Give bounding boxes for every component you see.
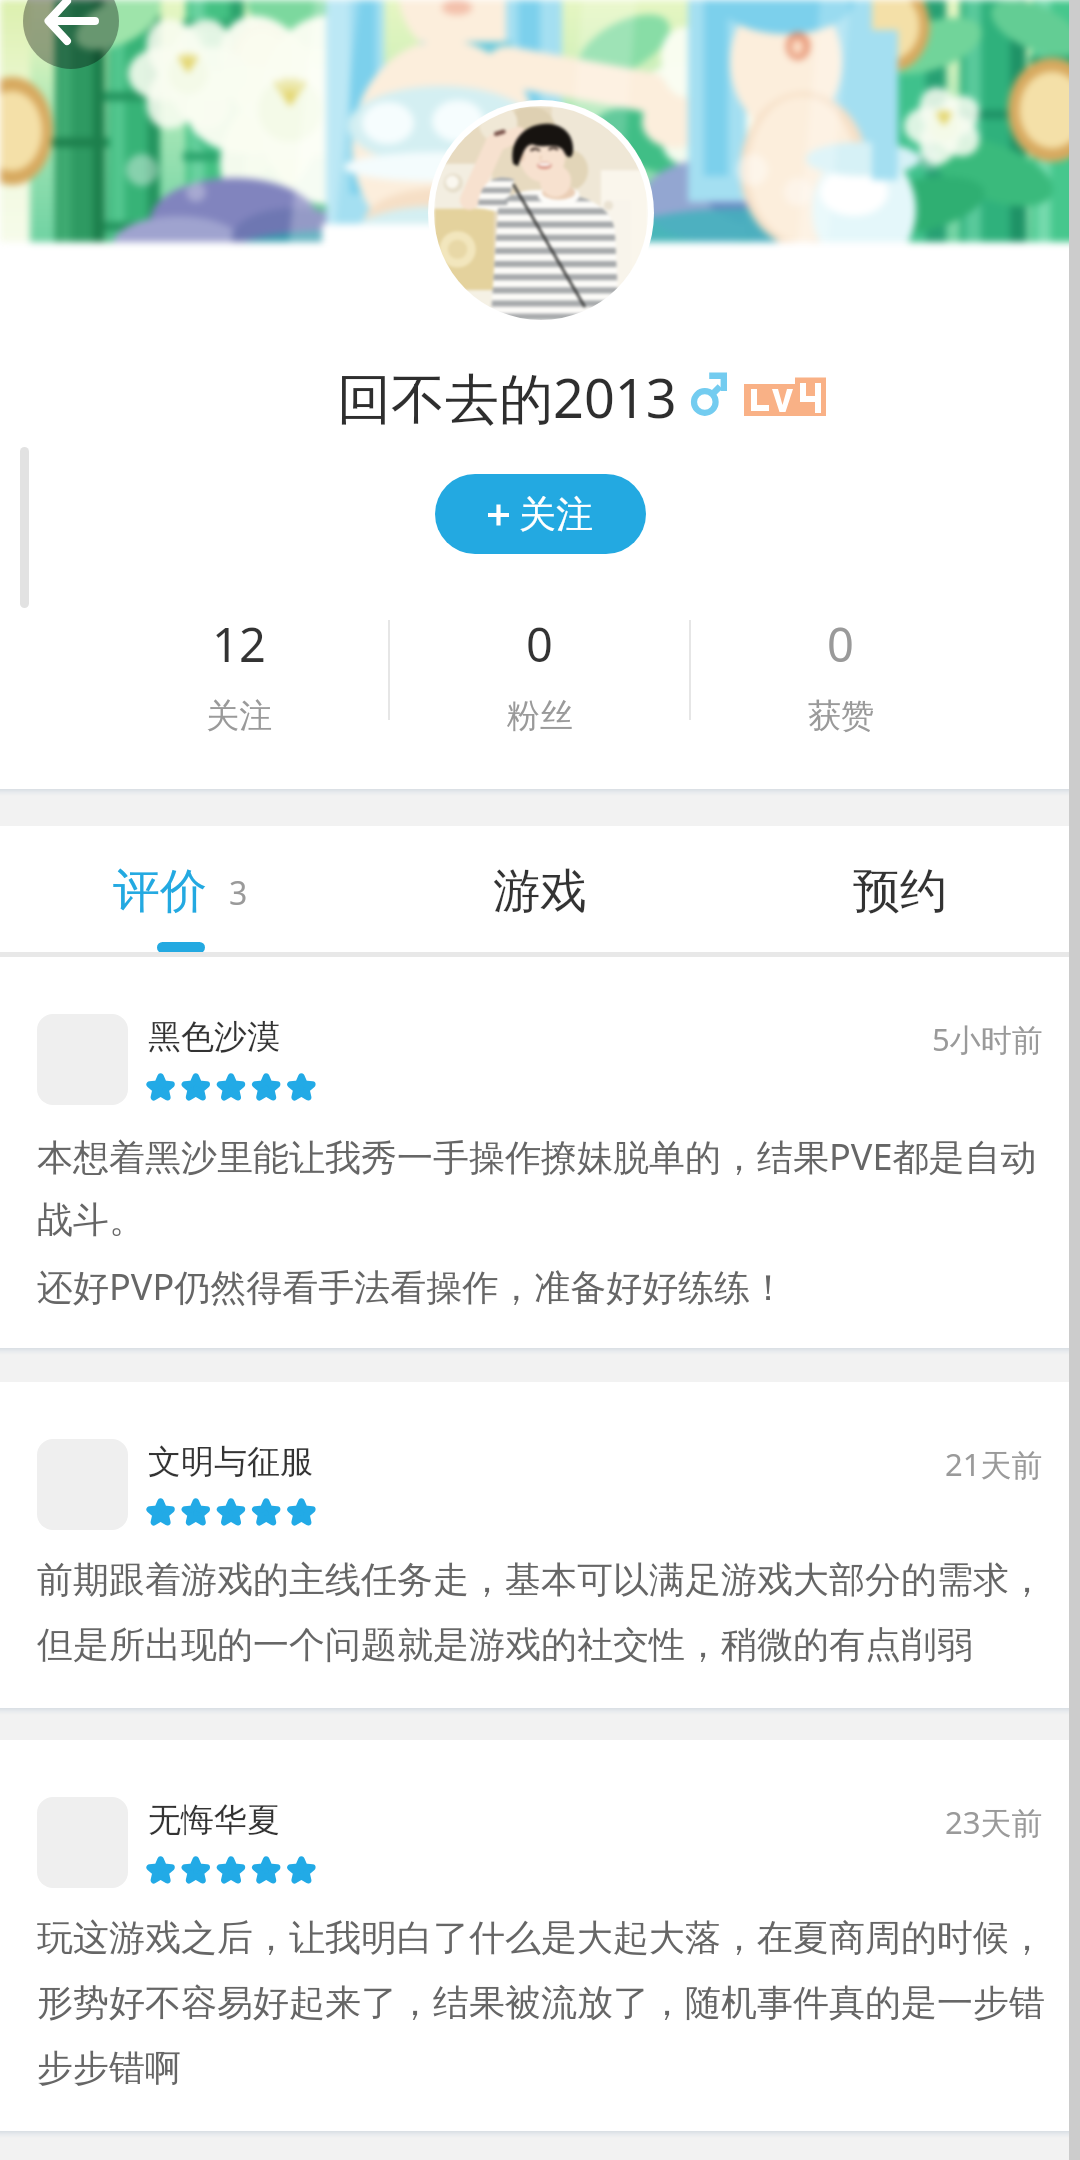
staticText: 3 [229,871,248,915]
staticText: 战斗。 [37,1197,145,1242]
staticText: 5小时前 [932,1018,1043,1060]
button[interactable]: 0 [390,612,689,737]
staticText: 无悔华夏 [148,1799,280,1841]
staticText: 步步错啊 [37,2045,181,2090]
staticText: 本想着黑沙里能让我秀一手操作撩妹脱单的，结果PVE都是自动 [37,1132,1037,1181]
staticText: 游戏 [493,862,587,921]
button[interactable]: 黑色沙漠 [0,957,1080,1348]
staticText: 玩这游戏之后，让我明白了什么是大起大落，在夏商周的时候， [37,1915,1045,1960]
staticText: 关注 [519,491,593,538]
staticText: 23天前 [945,1801,1043,1843]
button[interactable]: Back [23,0,119,69]
staticText: 还好PVP仍然得看手法看操作，准备好好练练！ [37,1262,787,1311]
button[interactable]: 文明与征服 [0,1382,1080,1708]
button[interactable]: 关注 [435,474,646,554]
staticText: 粉丝 [507,695,573,737]
staticText: 获赞 [808,695,874,737]
staticText: 但是所出现的一个问题就是游戏的社交性，稍微的有点削弱 [37,1622,973,1667]
staticText: 回不去的2013 [337,360,677,434]
button[interactable]: 游戏 [360,826,720,957]
staticText: 评价 [113,862,207,921]
staticText: 形势好不容易好起来了，结果被流放了，随机事件真的是一步错 [37,1980,1045,2025]
staticText: 黑色沙漠 [148,1016,280,1058]
staticText: 关注 [206,695,272,737]
button[interactable]: 评价 [0,826,360,957]
staticText: 文明与征服 [148,1441,313,1483]
staticText: 21天前 [945,1443,1043,1485]
staticText: 前期跟着游戏的主线任务走，基本可以满足游戏大部分的需求， [37,1557,1045,1602]
staticText: 12 [212,612,266,676]
button[interactable]: 预约 [720,826,1080,957]
staticText: 0 [526,612,553,676]
staticText: 预约 [853,862,947,921]
button[interactable]: 无悔华夏 [0,1740,1080,2131]
staticText: 0 [827,612,854,676]
button[interactable]: 12 [89,612,388,737]
button[interactable]: 0 [691,612,990,737]
other: Level 4 [742,375,830,423]
